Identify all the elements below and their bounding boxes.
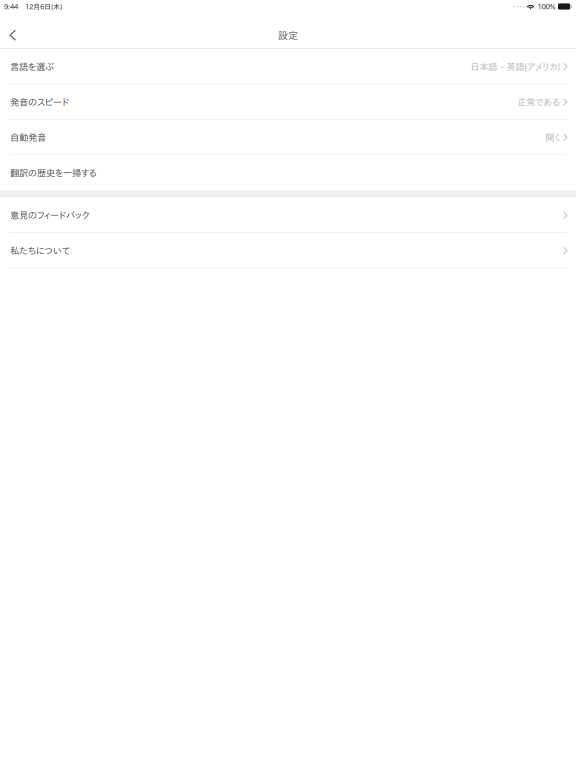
staticText: 日本語 - 英語(アメリカ) (470, 62, 560, 71)
staticText: 発音のスピード (10, 97, 69, 107)
staticText: 翻訳の歴史を一掃する (10, 168, 97, 177)
staticText: 設定 (278, 30, 298, 40)
button[interactable]: Back (0, 22, 27, 47)
staticText: 12月6日(木) (25, 3, 62, 10)
button[interactable]: 意見のフィードバック (0, 198, 576, 233)
button[interactable]: 発音のスピード (0, 84, 576, 120)
button[interactable]: 翻訳の歴史を一掃する (0, 155, 576, 191)
staticText: 言語を選ぶ (10, 62, 54, 71)
button[interactable]: 自動発音 (0, 120, 576, 155)
staticText: 意見のフィードバック (10, 211, 89, 220)
staticText: 自動発音 (10, 133, 46, 142)
staticText: 100% (537, 3, 555, 10)
staticText: 9:44 (4, 3, 18, 10)
staticText: 正常である (517, 97, 560, 107)
staticText: 私たちについて (10, 246, 70, 255)
staticText: 開く (545, 133, 560, 142)
button[interactable]: 私たちについて (0, 233, 576, 268)
button[interactable]: 言語を選ぶ (0, 49, 576, 84)
